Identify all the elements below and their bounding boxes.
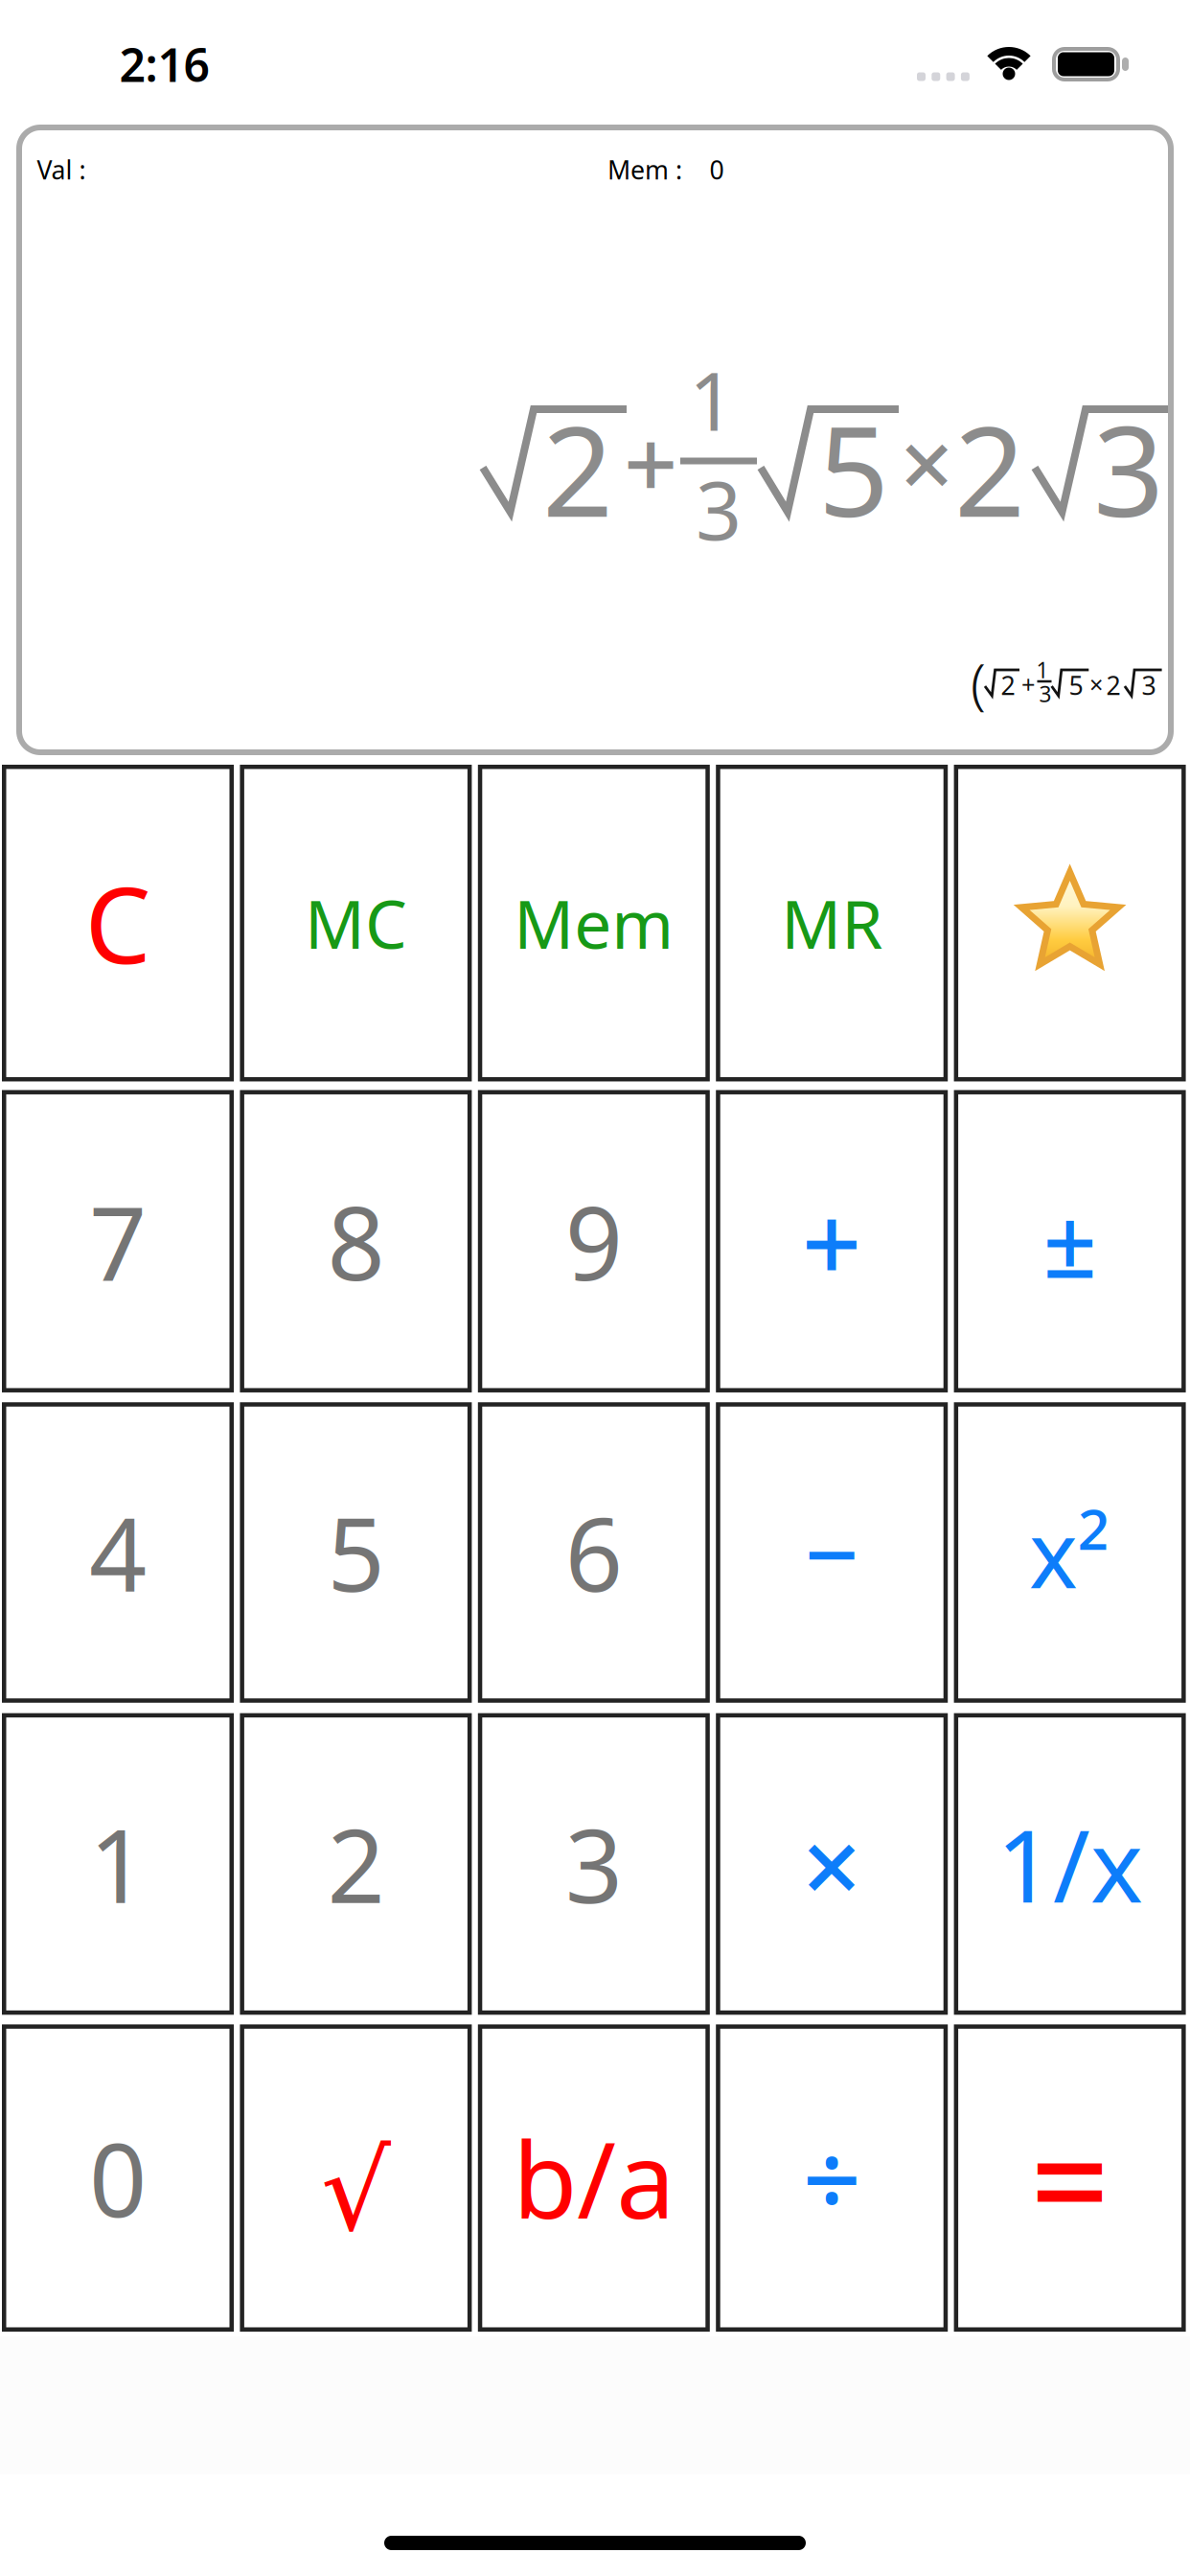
- staticText: 5: [818, 386, 889, 551]
- staticText: 6: [565, 1486, 623, 1620]
- staticText: 1: [1036, 655, 1049, 684]
- staticText: 2: [327, 1797, 385, 1931]
- staticText: +: [802, 1172, 862, 1311]
- button[interactable]: MC: [240, 765, 472, 1081]
- staticText: (: [971, 646, 986, 719]
- staticText: 3: [1093, 386, 1164, 551]
- staticText: 7: [89, 1174, 147, 1308]
- button[interactable]: 3: [478, 1713, 710, 2015]
- staticText: 1/x: [997, 1798, 1143, 1930]
- button[interactable]: −: [716, 1402, 948, 1703]
- staticText: ×: [802, 1794, 862, 1934]
- staticText: +: [1021, 668, 1035, 700]
- staticText: 5: [1069, 668, 1083, 702]
- staticText: b/a: [513, 2108, 675, 2248]
- button[interactable]: C: [2, 765, 234, 1081]
- staticText: 1: [89, 1797, 147, 1931]
- staticText: ±: [1043, 1178, 1097, 1304]
- button[interactable]: 5: [240, 1402, 472, 1703]
- button[interactable]: ×: [716, 1713, 948, 2015]
- staticText: 9: [565, 1174, 623, 1308]
- button[interactable]: 2: [240, 1713, 472, 2015]
- staticText: 0: [89, 2111, 147, 2245]
- button[interactable]: b/a: [478, 2024, 710, 2332]
- staticText: Val :: [37, 153, 86, 187]
- staticText: 8: [327, 1174, 385, 1308]
- button[interactable]: √: [240, 2024, 472, 2332]
- button[interactable]: MR: [716, 765, 948, 1081]
- staticText: ×: [900, 399, 953, 525]
- button[interactable]: 1/x: [954, 1713, 1186, 2015]
- staticText: 2:16: [119, 34, 209, 95]
- staticText: 3: [1039, 679, 1052, 708]
- staticText: ÷: [803, 2110, 861, 2246]
- staticText: x²: [1029, 1491, 1111, 1614]
- staticText: 0: [709, 153, 724, 187]
- staticText: 2: [1001, 668, 1015, 702]
- staticText: =: [1031, 2086, 1109, 2270]
- staticText: 3: [696, 455, 742, 562]
- staticText: 4: [89, 1486, 147, 1620]
- staticText: 2: [542, 386, 613, 551]
- staticText: Mem: [514, 879, 674, 967]
- button[interactable]: ±: [954, 1090, 1186, 1392]
- button[interactable]: +: [716, 1090, 948, 1392]
- button[interactable]: Mem: [478, 765, 710, 1081]
- staticText: 2: [1106, 668, 1121, 702]
- staticText: MC: [305, 879, 407, 967]
- staticText: −: [805, 1490, 859, 1615]
- staticText: C: [85, 853, 151, 993]
- staticText: Mem :: [607, 153, 682, 187]
- staticText: 5: [327, 1486, 385, 1620]
- button[interactable]: 0: [2, 2024, 234, 2332]
- staticText: MR: [781, 879, 883, 967]
- staticText: 1: [689, 346, 735, 453]
- staticText: 3: [1142, 668, 1156, 702]
- staticText: ×: [1089, 668, 1103, 700]
- button[interactable]: ÷: [716, 2024, 948, 2332]
- button[interactable]: 8: [240, 1090, 472, 1392]
- staticText: 3: [565, 1797, 623, 1931]
- button[interactable]: x²: [954, 1402, 1186, 1703]
- button[interactable]: 6: [478, 1402, 710, 1703]
- button[interactable]: 9: [478, 1090, 710, 1392]
- button[interactable]: [954, 765, 1186, 1081]
- button[interactable]: 4: [2, 1402, 234, 1703]
- button[interactable]: =: [954, 2024, 1186, 2332]
- staticText: +: [624, 399, 677, 525]
- button[interactable]: 7: [2, 1090, 234, 1392]
- staticText: √: [321, 2129, 391, 2254]
- staticText: 2: [954, 386, 1025, 551]
- button[interactable]: 1: [2, 1713, 234, 2015]
